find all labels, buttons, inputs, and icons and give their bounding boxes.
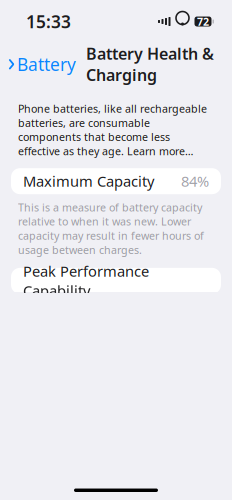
staticText: 72 — [197, 14, 209, 29]
staticText: Peak Performance Capability — [23, 261, 149, 300]
staticText: Maximum Capacity — [23, 171, 154, 191]
staticText: Battery Health & Charging — [86, 43, 214, 85]
button[interactable]: Battery — [0, 49, 76, 80]
staticText: This is a measure of battery capacity re… — [18, 200, 204, 257]
staticText: 15:33 — [26, 10, 71, 33]
button[interactable]: Maximum Capacity — [0, 168, 232, 194]
staticText: Phone batteries, like all rechargeable b… — [18, 101, 207, 158]
staticText: Battery — [17, 53, 76, 76]
staticText: 84% — [181, 171, 209, 191]
button[interactable]: Peak Performance Capability — [0, 268, 232, 294]
